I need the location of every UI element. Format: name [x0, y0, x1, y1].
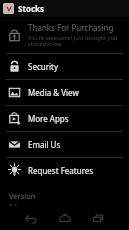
button[interactable]: Email Us [0, 132, 129, 157]
staticText: 3.5 [9, 202, 18, 206]
staticText: You're awesome! Just thought you should … [28, 34, 118, 48]
button[interactable]: Media & View [0, 80, 129, 105]
button[interactable]: Thanks For Purchasing [0, 17, 129, 53]
staticText: Version [9, 191, 36, 201]
staticText: Request Features [28, 165, 94, 176]
staticText: Media & View [28, 87, 79, 98]
staticText: More Apps [28, 113, 69, 124]
button[interactable]: Recents [85, 207, 111, 229]
staticText: Email Us [28, 139, 61, 150]
staticText: Security [28, 61, 59, 72]
other: App icon [3, 3, 14, 14]
button[interactable]: Security [0, 54, 129, 79]
staticText: Stocks [18, 3, 44, 14]
button[interactable]: Request Features [0, 158, 129, 183]
button[interactable]: Home [52, 207, 78, 229]
button[interactable]: More Apps [0, 106, 129, 131]
button[interactable]: Back [18, 207, 44, 229]
staticText: Thanks For Purchasing [28, 22, 114, 33]
